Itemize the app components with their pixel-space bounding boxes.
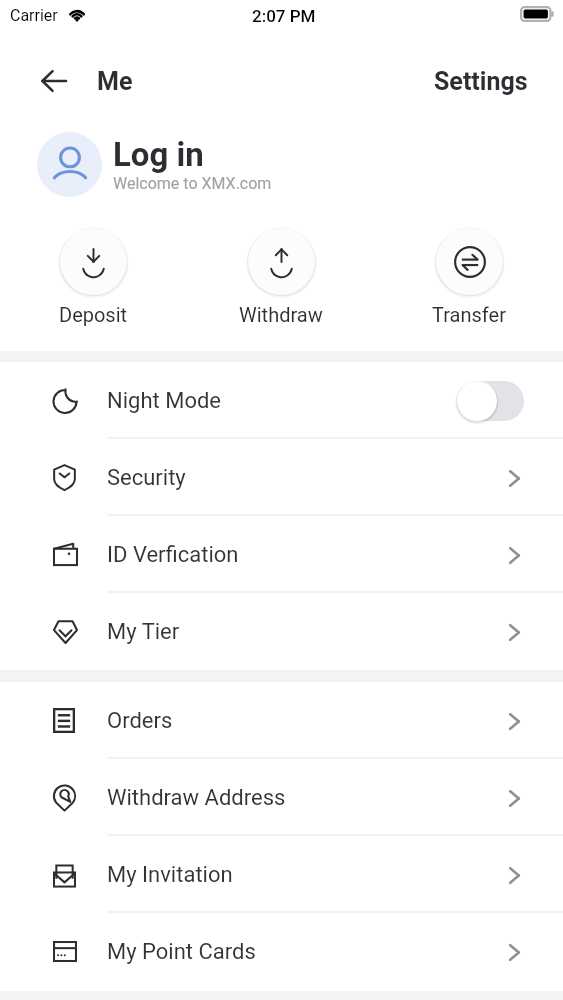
staticText: ID Verfication — [107, 542, 239, 568]
button[interactable]: Back — [31, 58, 77, 104]
staticText: Log in — [113, 135, 204, 174]
button[interactable]: My Invitation — [0, 836, 563, 913]
button[interactable]: Open — [500, 938, 528, 966]
staticText: Withdraw Address — [107, 785, 286, 811]
staticText: Carrier — [10, 6, 58, 25]
staticText: Withdraw — [239, 303, 323, 326]
button[interactable]: Night Mode — [0, 362, 563, 439]
staticText: Orders — [107, 708, 173, 734]
button[interactable]: Open — [500, 541, 528, 569]
button[interactable]: Open — [500, 861, 528, 889]
button[interactable]: Security — [0, 439, 563, 516]
button[interactable]: Transfer — [432, 226, 506, 326]
button[interactable]: Open — [500, 707, 528, 735]
staticText: Night Mode — [107, 388, 221, 414]
staticText: My Point Cards — [107, 939, 256, 965]
button[interactable]: Deposit — [58, 226, 129, 326]
staticText: Security — [107, 465, 186, 491]
button[interactable]: Log in — [0, 131, 563, 197]
button[interactable]: Settings — [418, 61, 563, 102]
staticText: Welcome to XMX.com — [113, 174, 272, 193]
button[interactable]: My Point Cards — [0, 913, 563, 990]
button[interactable]: My Tier — [0, 593, 563, 670]
staticText: Transfer — [432, 303, 506, 326]
staticText: 2:07 PM — [252, 6, 316, 26]
staticText: My Invitation — [107, 862, 233, 888]
staticText: My Tier — [107, 619, 180, 645]
button[interactable]: ID Verfication — [0, 516, 563, 593]
staticText: Me — [97, 67, 133, 96]
button[interactable]: Withdraw — [239, 226, 323, 326]
button[interactable]: Withdraw Address — [0, 759, 563, 836]
staticText: Deposit — [59, 303, 128, 326]
button[interactable]: Open — [500, 618, 528, 646]
button[interactable]: Orders — [0, 682, 563, 759]
staticText: Settings — [434, 67, 528, 96]
button[interactable]: Open — [500, 464, 528, 492]
button[interactable]: Night Mode — [457, 381, 524, 421]
button[interactable]: Open — [500, 784, 528, 812]
